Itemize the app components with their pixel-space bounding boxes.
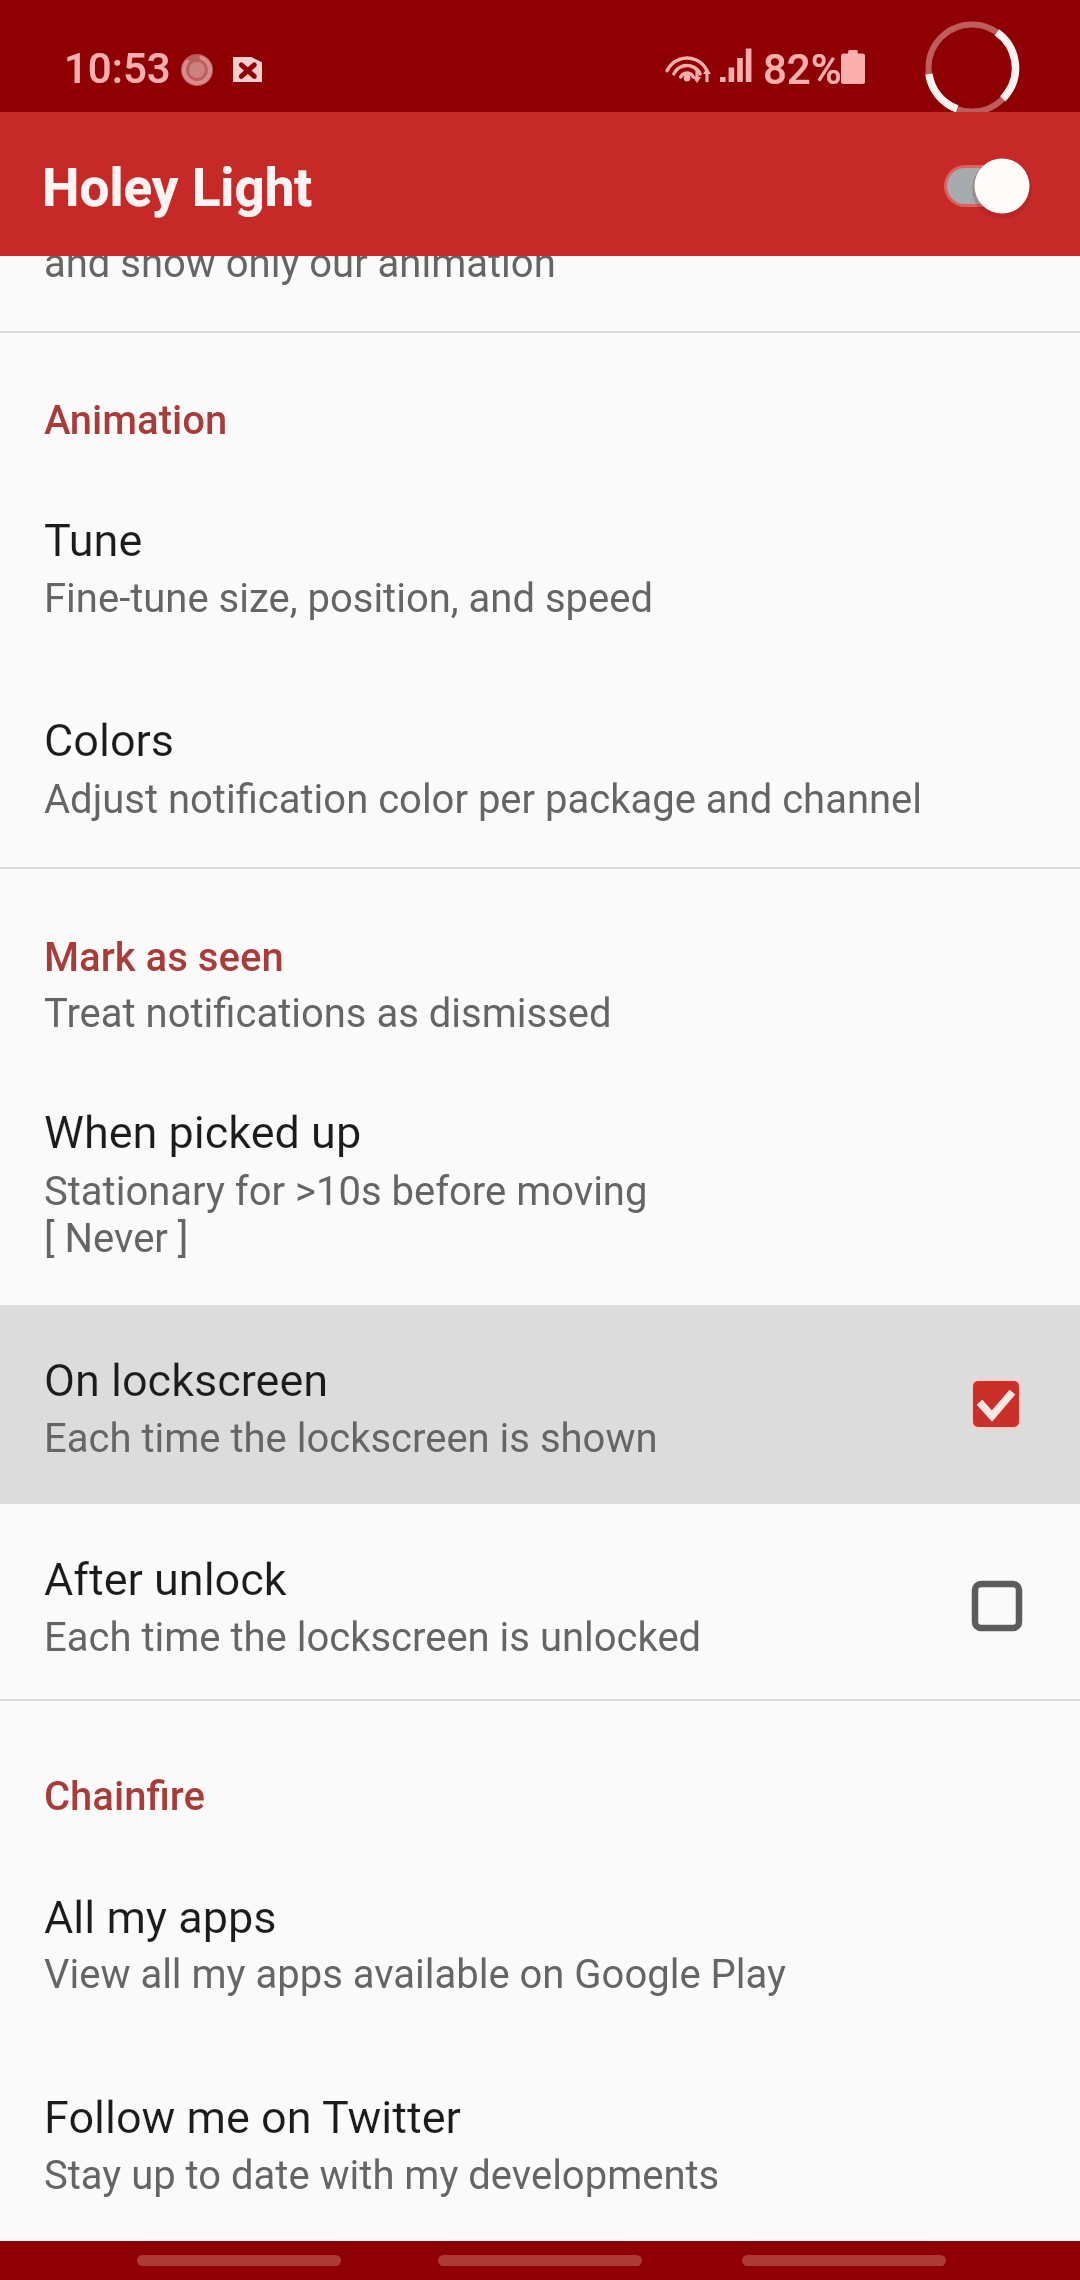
staticText: Treat notifications as dismissed — [44, 990, 612, 1037]
staticText: Follow me on Twitter — [44, 2091, 461, 2144]
staticText: Adjust notification color per package an… — [44, 776, 923, 823]
staticText: When picked up — [44, 1106, 362, 1159]
other: Unchecked — [972, 1581, 1022, 1631]
button[interactable]: Enable Holey Light — [930, 125, 1050, 243]
button[interactable]: When picked up, Stationary for >10s befo… — [0, 1080, 1080, 1305]
button[interactable]: All my apps, View all my apps available … — [0, 1860, 1080, 2040]
button[interactable]: After unlock, Each time the lockscreen i… — [0, 1504, 1080, 1698]
button[interactable]: On lockscreen — [0, 1305, 1080, 1504]
staticText: Stationary for >10s before moving [ Neve… — [44, 1168, 648, 1262]
staticText: After unlock — [44, 1553, 287, 1606]
staticText: Tune — [44, 514, 143, 567]
other: Notification ring — [920, 16, 1024, 120]
staticText: 10:53 — [64, 44, 171, 93]
button[interactable]: Tune, Fine-tune size, position, and spee… — [0, 450, 1080, 645]
button[interactable]: Colors, Adjust notification color per pa… — [0, 645, 1080, 866]
staticText: 82% — [763, 45, 842, 94]
staticText: Animation — [44, 397, 228, 444]
staticText: On lockscreen — [44, 1354, 329, 1407]
button[interactable]: Follow me on Twitter, Stay up to date wi… — [0, 2040, 1080, 2243]
staticText: Fine-tune size, position, and speed — [44, 575, 654, 622]
staticText: View all my apps available on Google Pla… — [44, 1951, 786, 1998]
staticText: Each time the lockscreen is shown — [44, 1415, 658, 1462]
staticText: All my apps — [44, 1891, 277, 1944]
staticText: Stay up to date with my developments — [44, 2152, 720, 2199]
staticText: Mark as seen — [44, 934, 284, 981]
staticText: Chainfire — [44, 1773, 205, 1820]
staticText: Each time the lockscreen is unlocked — [44, 1614, 702, 1661]
button[interactable]: Mark as seen, Treat notifications as dis… — [0, 900, 1080, 1080]
staticText: Holey Light — [42, 157, 313, 219]
staticText: Colors — [44, 714, 175, 767]
other: Checked — [971, 1379, 1021, 1429]
staticText: and show only our animation — [44, 240, 556, 287]
